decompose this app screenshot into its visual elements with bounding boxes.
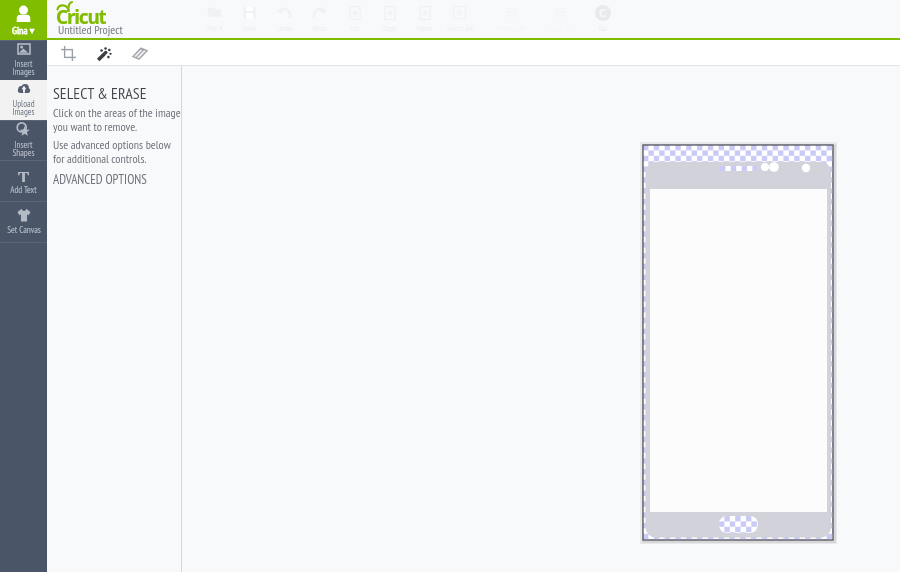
button[interactable]: C bbox=[585, 0, 620, 38]
button[interactable]: Magic wand select bbox=[91, 40, 117, 66]
staticText: Use advanced options below for additiona… bbox=[53, 137, 171, 166]
button[interactable]: T bbox=[0, 160, 47, 201]
staticText: Insert Shapes bbox=[12, 139, 35, 159]
staticText: Insert Images bbox=[12, 58, 35, 78]
staticText: Click on the areas of the image you want… bbox=[53, 105, 181, 134]
staticText: Upload Images bbox=[12, 98, 35, 118]
staticText: Untitled Project bbox=[58, 22, 123, 38]
staticText: C bbox=[599, 5, 607, 20]
staticText: Set Canvas bbox=[7, 224, 41, 236]
button[interactable]: Gina ▾ bbox=[0, 0, 47, 38]
staticText: Go bbox=[599, 23, 607, 33]
staticText: Add Text bbox=[10, 184, 37, 196]
button[interactable]: Set Canvas bbox=[0, 201, 47, 242]
staticText: Cricut bbox=[56, 4, 106, 26]
staticText: ADVANCED OPTIONS bbox=[53, 171, 147, 188]
button[interactable]: Insert Shapes bbox=[0, 120, 47, 160]
staticText: SELECT & ERASE bbox=[53, 83, 147, 104]
button[interactable]: Crop bbox=[55, 40, 81, 66]
staticText: Gina ▾ bbox=[12, 24, 35, 37]
button[interactable]: ADVANCED OPTIONS bbox=[53, 171, 147, 188]
staticText: T bbox=[18, 166, 30, 182]
button[interactable]: Eraser bbox=[127, 40, 153, 66]
button[interactable]: Insert Images bbox=[0, 40, 47, 80]
button[interactable]: Upload Images bbox=[0, 80, 47, 120]
